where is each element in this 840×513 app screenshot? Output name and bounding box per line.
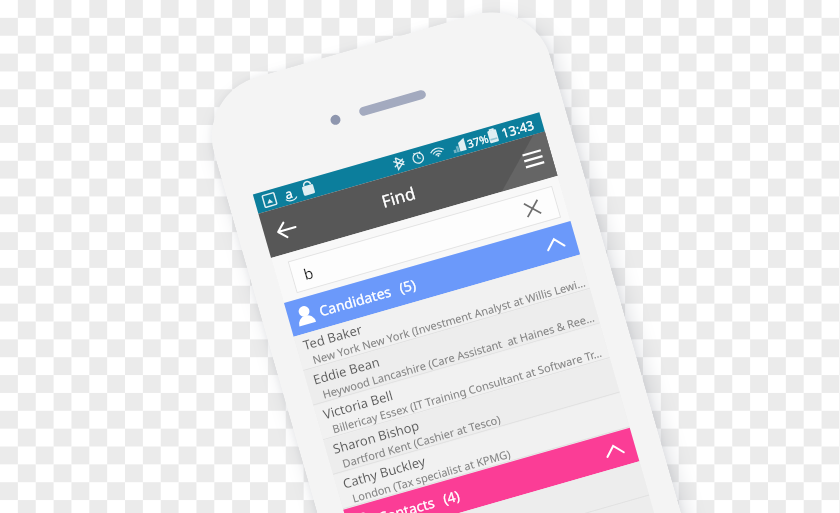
button[interactable]: b (288, 186, 561, 293)
button[interactable]: Clear search (504, 186, 561, 231)
button[interactable]: Candidates (284, 221, 580, 337)
staticText: Ted Baker (301, 320, 364, 354)
staticText: Dartford Kent (Cashier at Tesco) (340, 411, 502, 471)
staticText: Victoria Bell (321, 386, 395, 423)
button[interactable]: Ted Baker (294, 255, 590, 371)
staticText: Contacts (376, 493, 437, 513)
button[interactable]: Eddie Bean (304, 289, 600, 406)
staticText: Eddie Bean (311, 352, 382, 389)
staticText: Sharon Bishop (331, 416, 421, 458)
staticText: 37% (465, 131, 490, 151)
button[interactable]: Menu (509, 132, 557, 186)
button[interactable]: Sharon Bishop (323, 358, 620, 475)
staticText: Find (379, 181, 419, 213)
button[interactable]: Cathy Buckley (333, 393, 630, 510)
staticText: b (301, 262, 316, 284)
staticText: Billericay Essex (IT Training Consultant… (331, 345, 604, 436)
button[interactable]: Contacts (343, 428, 639, 513)
staticText: (4) (441, 485, 462, 508)
staticText: Heywood Lancashire (Care Assistant at Ha… (321, 309, 597, 402)
staticText: 13:43 (499, 115, 537, 142)
staticText: a (283, 184, 295, 203)
button[interactable]: Back (258, 201, 315, 258)
staticText: (5) (397, 274, 418, 297)
button[interactable]: Adam Brown (353, 461, 649, 513)
staticText: London (Tax specialist at KPMG) (350, 446, 512, 505)
button[interactable]: Victoria Bell (313, 324, 610, 440)
staticText: Cathy Buckley (341, 452, 427, 492)
staticText: Candidates (317, 282, 393, 320)
staticText: New York New York (Investment Analyst at… (311, 274, 588, 367)
